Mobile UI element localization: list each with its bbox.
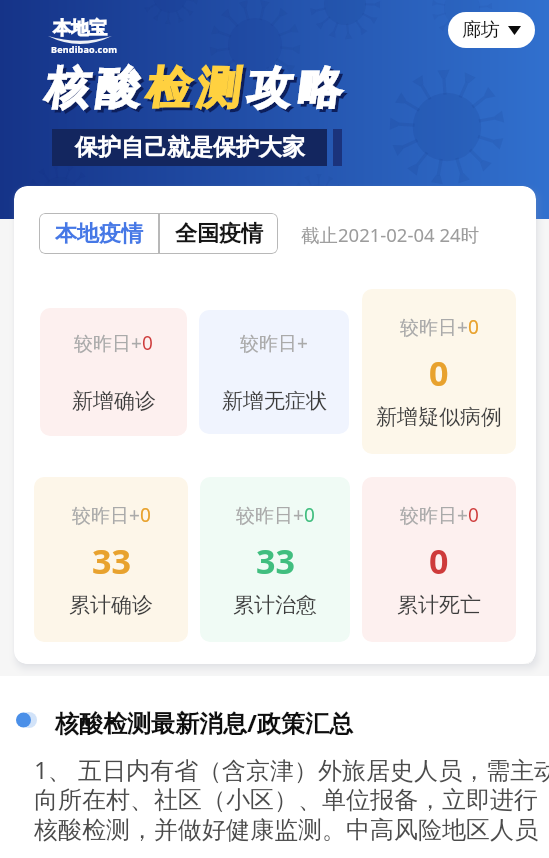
staticText: 保护自己就是保护大家 <box>75 133 305 162</box>
staticText: 检测 <box>143 64 244 119</box>
staticText: 0 <box>468 502 479 528</box>
staticText: 攻略 <box>244 64 345 119</box>
staticText: 0 <box>429 350 449 396</box>
staticText: 较昨日+ <box>400 314 468 340</box>
staticText: Bendibao.com <box>51 43 118 55</box>
button[interactable]: 较昨日+ <box>34 477 188 642</box>
staticText: 0 <box>142 330 153 356</box>
staticText: 截止2021-02-04 24时 <box>301 222 480 247</box>
staticText: 0 <box>140 502 151 528</box>
button[interactable]: 廊坊 <box>448 12 535 48</box>
staticText: 检测 <box>140 61 241 116</box>
staticText: 较昨日+ <box>240 330 308 356</box>
staticText: 新增确诊 <box>72 388 156 414</box>
staticText: 较昨日+ <box>72 502 140 528</box>
button[interactable]: 本地疫情 <box>39 213 159 254</box>
staticText: 0 <box>468 314 479 340</box>
staticText: 0 <box>429 538 449 584</box>
staticText: 较昨日+ <box>74 330 142 356</box>
button[interactable]: 较昨日+ <box>40 308 187 436</box>
staticText: 较昨日+ <box>236 502 304 528</box>
staticText: 本地疫情 <box>55 220 143 248</box>
button[interactable]: 全国疫情 <box>159 213 278 254</box>
staticText: 廊坊 <box>462 18 500 42</box>
staticText: 33 <box>256 538 295 584</box>
staticText: 新增无症状 <box>222 388 327 414</box>
button[interactable]: 较昨日+ <box>199 310 349 434</box>
button[interactable]: 较昨日+ <box>362 289 516 454</box>
staticText: 核酸 <box>39 61 140 116</box>
button[interactable]: 较昨日+ <box>362 477 516 642</box>
staticText: 1、 五日内有省（含京津）外旅居史人员，需主动向所在村、社区（小区）、单位报备，… <box>34 753 549 846</box>
staticText: 新增疑似病例 <box>376 404 502 430</box>
staticText: 33 <box>92 538 131 584</box>
staticText: 较昨日+ <box>400 502 468 528</box>
staticText: 全国疫情 <box>175 220 263 248</box>
staticText: 0 <box>304 502 315 528</box>
staticText: 累计治愈 <box>233 592 317 618</box>
staticText: 核酸 <box>42 64 143 119</box>
button[interactable]: 较昨日+ <box>200 477 350 642</box>
staticText: 本地宝 <box>53 17 107 40</box>
staticText: 攻略 <box>241 61 342 116</box>
staticText: 累计死亡 <box>397 592 481 618</box>
staticText: 核酸检测最新消息/政策汇总 <box>55 706 353 739</box>
staticText: 累计确诊 <box>69 592 153 618</box>
